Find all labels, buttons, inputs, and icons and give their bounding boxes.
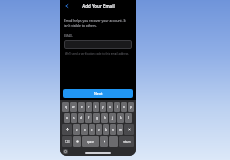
button[interactable]: m: [117, 124, 123, 135]
button[interactable]: l: [125, 113, 132, 123]
staticText: 123: [65, 140, 70, 144]
button[interactable]: Key: [109, 136, 118, 147]
staticText: return: [123, 140, 131, 144]
staticText: c: [91, 128, 93, 132]
staticText: b: [105, 128, 107, 132]
staticText: g: [96, 116, 98, 120]
staticText: x: [84, 128, 86, 132]
staticText: h: [104, 116, 106, 120]
button[interactable]: z: [73, 124, 80, 135]
staticText: m: [119, 128, 122, 132]
button[interactable]: o: [121, 102, 127, 112]
button[interactable]: Emoji: [73, 136, 81, 147]
button[interactable]: n: [110, 124, 116, 135]
button[interactable]: k: [117, 113, 124, 123]
staticText: j: [112, 116, 113, 120]
staticText: i: [117, 105, 118, 109]
staticText: EMAIL: [64, 34, 73, 38]
button[interactable]: b: [103, 124, 109, 135]
staticText: n: [112, 128, 114, 132]
staticText: space: [87, 140, 95, 144]
button[interactable]: space: [82, 136, 99, 147]
button[interactable]: c: [89, 124, 95, 135]
button[interactable]: Shift: [62, 124, 72, 135]
staticText: d: [80, 116, 82, 120]
button[interactable]: p: [128, 102, 134, 112]
staticText: e: [81, 105, 83, 109]
staticText: q: [65, 105, 67, 109]
staticText: u: [109, 105, 111, 109]
staticText: o: [123, 105, 125, 109]
staticText: v: [98, 128, 100, 132]
staticText: z: [76, 128, 78, 132]
staticText: r: [88, 105, 90, 109]
staticText: Next: [94, 91, 103, 96]
button[interactable]: i: [114, 102, 120, 112]
button[interactable]: e: [78, 102, 85, 112]
button[interactable]: q: [62, 102, 69, 112]
button[interactable]: return: [119, 136, 134, 147]
button[interactable]: Back: [62, 1, 71, 10]
staticText: p: [130, 105, 132, 109]
button[interactable]: j: [109, 113, 116, 123]
button[interactable]: h: [101, 113, 108, 123]
staticText: We'll send a verification code to this e…: [65, 52, 130, 56]
button[interactable]: y: [100, 102, 106, 112]
button[interactable]: g: [93, 113, 100, 123]
staticText: Add Your Email: [82, 3, 115, 9]
staticText: k: [120, 116, 122, 120]
button[interactable]: [64, 40, 132, 49]
button[interactable]: f: [85, 113, 92, 123]
button[interactable]: v: [96, 124, 102, 135]
staticText: f: [88, 116, 90, 120]
staticText: Email helps you recover your account. It…: [64, 18, 132, 28]
button[interactable]: Backspace: [124, 124, 134, 135]
staticText: l: [128, 116, 129, 120]
button[interactable]: a: [64, 113, 70, 123]
button[interactable]: w: [70, 102, 77, 112]
staticText: y: [102, 105, 104, 109]
button[interactable]: s: [71, 113, 77, 123]
staticText: s: [73, 116, 75, 120]
button[interactable]: Language: [63, 149, 68, 154]
button[interactable]: t: [93, 102, 99, 112]
button[interactable]: x: [81, 124, 88, 135]
button[interactable]: Microphone: [100, 136, 108, 147]
button[interactable]: u: [107, 102, 113, 112]
button[interactable]: r: [86, 102, 92, 112]
staticText: a: [66, 116, 68, 120]
staticText: w: [72, 105, 75, 109]
button[interactable]: 123: [62, 136, 72, 147]
staticText: t: [95, 105, 97, 109]
button[interactable]: d: [78, 113, 84, 123]
button[interactable]: Next: [63, 89, 133, 98]
